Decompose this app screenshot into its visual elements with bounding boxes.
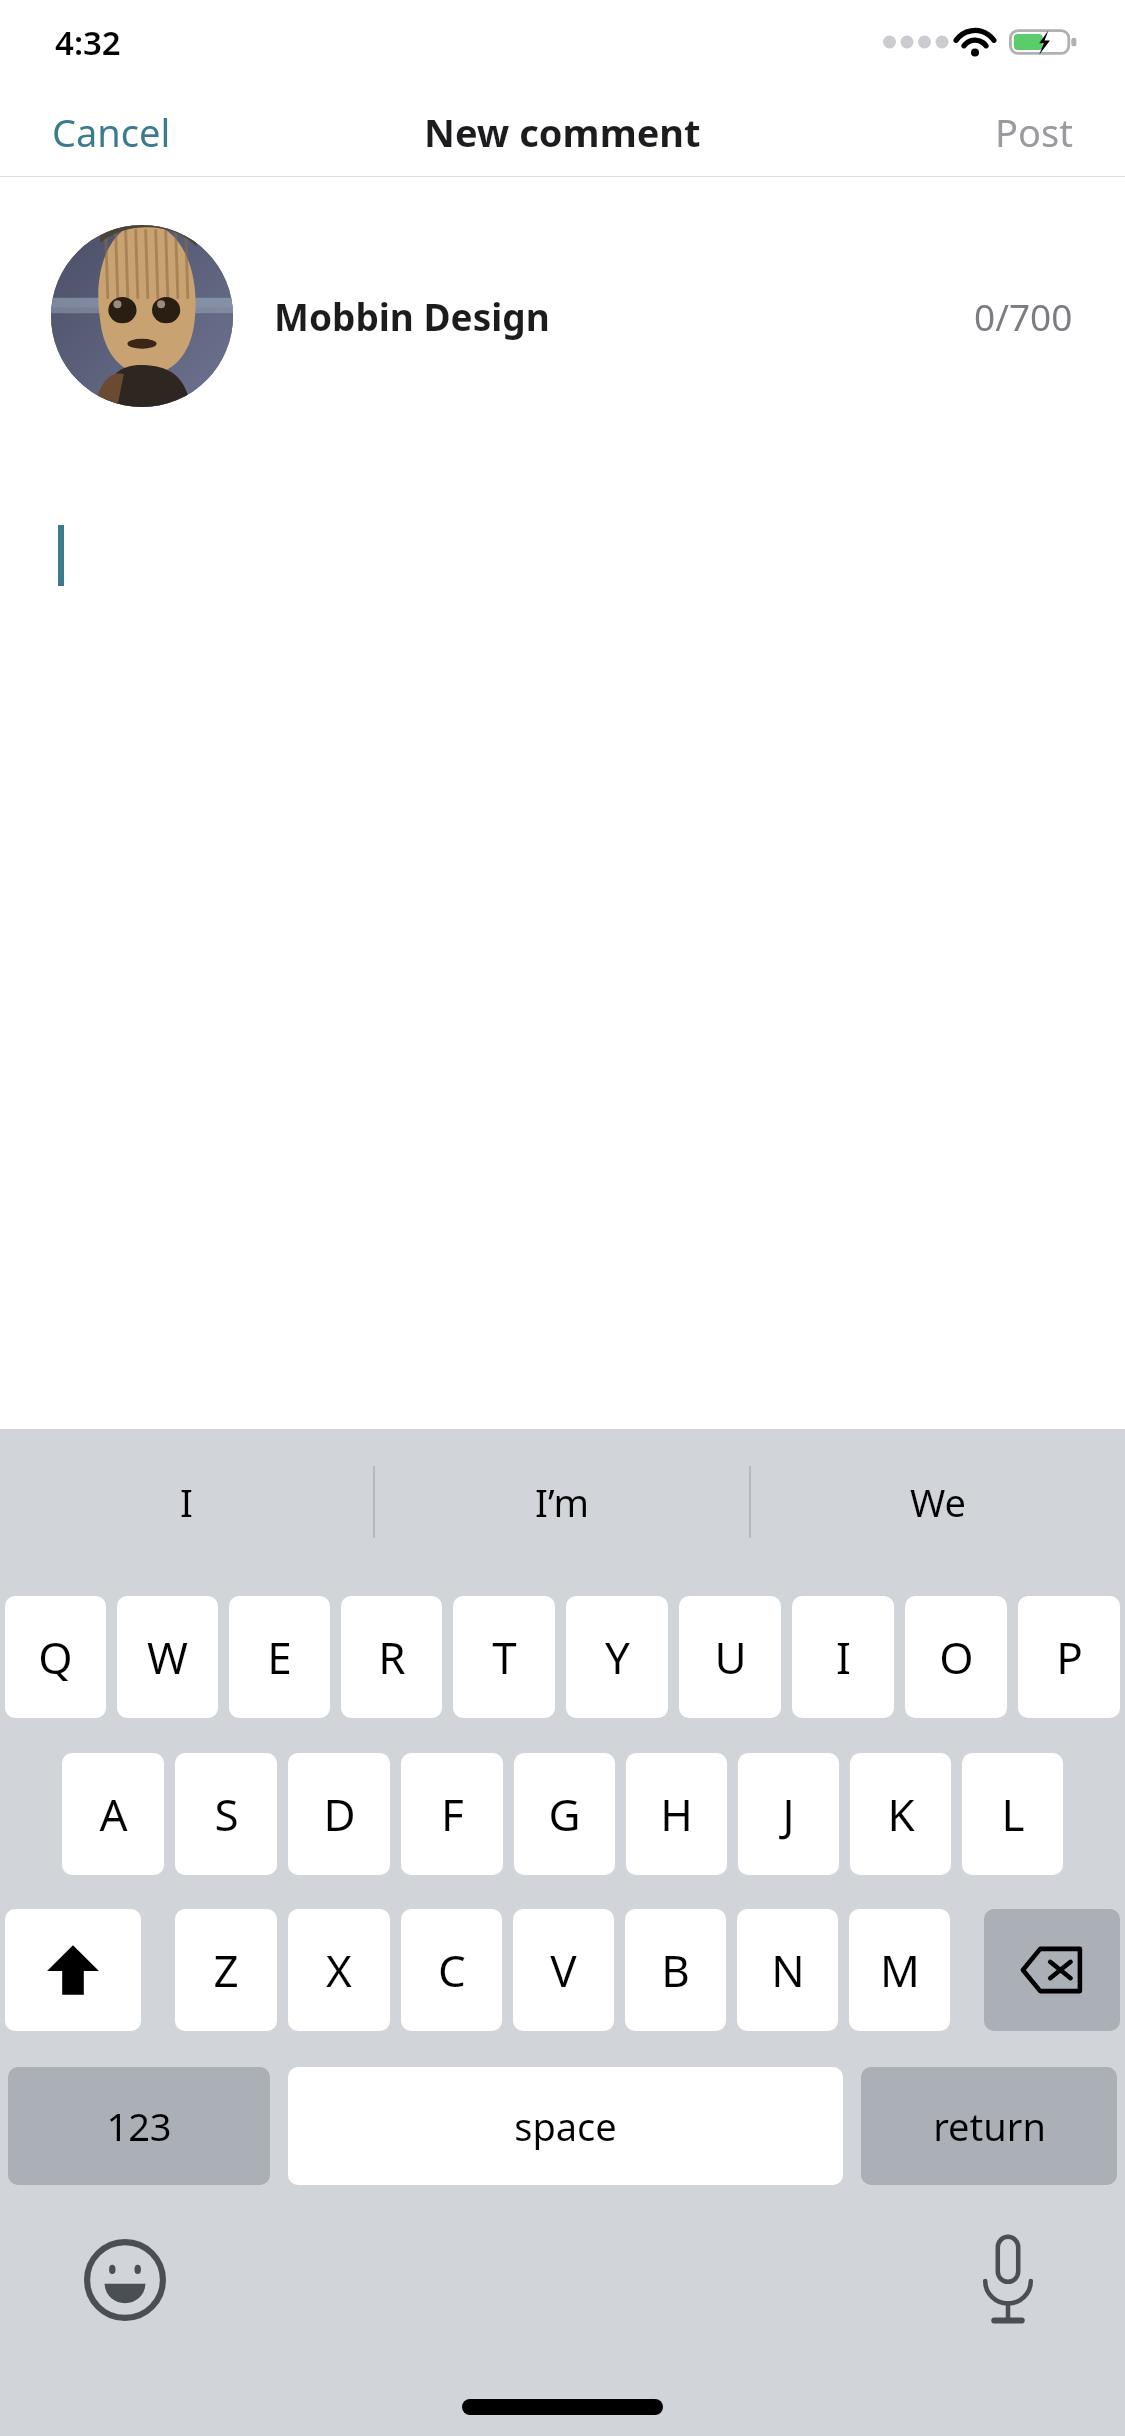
button[interactable]: Y (566, 1596, 668, 1718)
button[interactable]: L (962, 1753, 1063, 1875)
staticText: L (1001, 1784, 1025, 1844)
staticText: C (438, 1940, 466, 2000)
staticText: E (267, 1627, 292, 1687)
button[interactable]: X (288, 1909, 390, 2031)
button[interactable]: I (0, 1429, 373, 1574)
staticText: H (660, 1784, 693, 1844)
staticText: B (661, 1940, 690, 2000)
staticText: R (378, 1627, 406, 1687)
button[interactable]: M (849, 1909, 950, 2031)
button[interactable]: Cancel (0, 94, 195, 170)
button[interactable]: Q (5, 1596, 106, 1718)
button[interactable]: Backspace (984, 1909, 1120, 2031)
button[interactable]: T (453, 1596, 555, 1718)
staticText: Mobbin Design (274, 291, 550, 341)
button[interactable]: Shift (5, 1909, 141, 2031)
button[interactable]: H (626, 1753, 727, 1875)
staticText: N (771, 1940, 805, 2000)
staticText: U (714, 1627, 747, 1687)
button[interactable]: We (751, 1429, 1125, 1574)
staticText: I (180, 1476, 193, 1528)
staticText: X (326, 1940, 352, 2000)
button[interactable]: S (175, 1753, 277, 1875)
button[interactable]: Dictation (953, 2225, 1063, 2335)
staticText: New comment (424, 106, 701, 158)
button[interactable]: Post (971, 94, 1125, 170)
button[interactable]: space (288, 2067, 843, 2185)
button[interactable]: I’m (375, 1429, 749, 1574)
staticText: J (782, 1784, 795, 1844)
button[interactable]: 123 (8, 2067, 270, 2185)
button[interactable]: B (625, 1909, 726, 2031)
button[interactable]: K (850, 1753, 951, 1875)
staticText: T (492, 1627, 517, 1687)
button[interactable]: E (229, 1596, 330, 1718)
staticText: Q (38, 1627, 73, 1687)
button[interactable]: V (513, 1909, 614, 2031)
staticText: A (99, 1784, 128, 1844)
button[interactable]: D (288, 1753, 390, 1875)
button[interactable]: J (738, 1753, 839, 1875)
button[interactable]: Emoji (70, 2225, 180, 2335)
staticText: F (441, 1784, 464, 1844)
staticText: 4:32 (55, 20, 121, 65)
staticText: V (550, 1940, 577, 2000)
staticText: P (1056, 1627, 1083, 1687)
button[interactable]: W (117, 1596, 218, 1718)
staticText: O (939, 1627, 974, 1687)
staticText: return (933, 2100, 1046, 2152)
staticText: Z (213, 1940, 239, 2000)
button[interactable]: P (1018, 1596, 1120, 1718)
staticText: Post (995, 106, 1073, 158)
staticText: I (836, 1627, 851, 1687)
button[interactable]: return (861, 2067, 1117, 2185)
staticText: S (214, 1784, 239, 1844)
staticText: I’m (535, 1476, 589, 1528)
button[interactable]: I (792, 1596, 894, 1718)
button[interactable]: N (737, 1909, 838, 2031)
staticText: K (887, 1784, 915, 1844)
staticText: 0/700 (974, 291, 1073, 341)
button[interactable]: F (401, 1753, 503, 1875)
button[interactable]: C (401, 1909, 502, 2031)
button[interactable]: U (679, 1596, 781, 1718)
button[interactable]: G (514, 1753, 615, 1875)
staticText: Y (605, 1627, 630, 1687)
button[interactable]: A (62, 1753, 164, 1875)
staticText: G (548, 1784, 581, 1844)
staticText: 123 (106, 2100, 172, 2152)
staticText: We (910, 1476, 967, 1528)
button[interactable]: O (905, 1596, 1007, 1718)
staticText: space (514, 2100, 617, 2152)
staticText: M (880, 1940, 920, 2000)
button[interactable]: Z (175, 1909, 277, 2031)
staticText: W (147, 1627, 188, 1687)
staticText: Cancel (52, 106, 171, 158)
staticText: D (323, 1784, 356, 1844)
button[interactable]: R (341, 1596, 442, 1718)
